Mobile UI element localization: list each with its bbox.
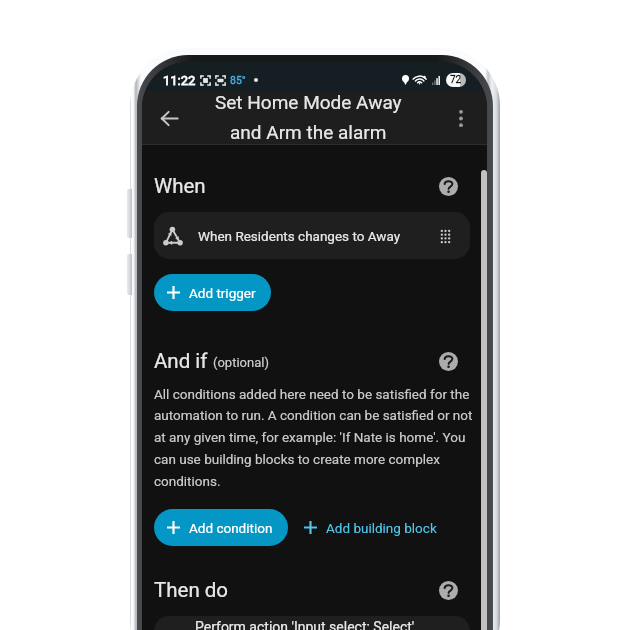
button[interactable]: Help (434, 347, 462, 375)
staticText: And if (154, 349, 208, 373)
staticText: Set Home Mode Away (215, 91, 402, 113)
button[interactable]: When Residents changes to Away (154, 212, 470, 259)
staticText: All conditions added here need to be sat… (154, 386, 474, 490)
staticText: (optional) (213, 355, 269, 370)
staticText: Add condition (189, 520, 273, 536)
staticText: 85° (230, 74, 246, 86)
button[interactable]: Add condition (154, 509, 288, 546)
button[interactable]: Help (434, 576, 462, 604)
staticText: 11:22 (163, 73, 196, 88)
staticText: Perform action 'Input select: Select' (195, 619, 415, 630)
staticText: and Arm the alarm (230, 121, 387, 143)
staticText: Then do (154, 578, 229, 602)
button[interactable]: More options (442, 99, 480, 137)
staticText: Add trigger (189, 285, 256, 301)
button[interactable]: Help (434, 172, 462, 200)
button[interactable]: Add building block (299, 509, 442, 546)
staticText: When Residents changes to Away (198, 228, 401, 244)
button[interactable]: Back (148, 97, 190, 139)
staticText: 72 (450, 74, 462, 86)
button[interactable]: Perform action 'Input select: Select' (154, 616, 470, 630)
staticText: Add building block (326, 520, 437, 536)
button[interactable]: Add trigger (154, 274, 271, 311)
staticText: When (154, 174, 206, 198)
